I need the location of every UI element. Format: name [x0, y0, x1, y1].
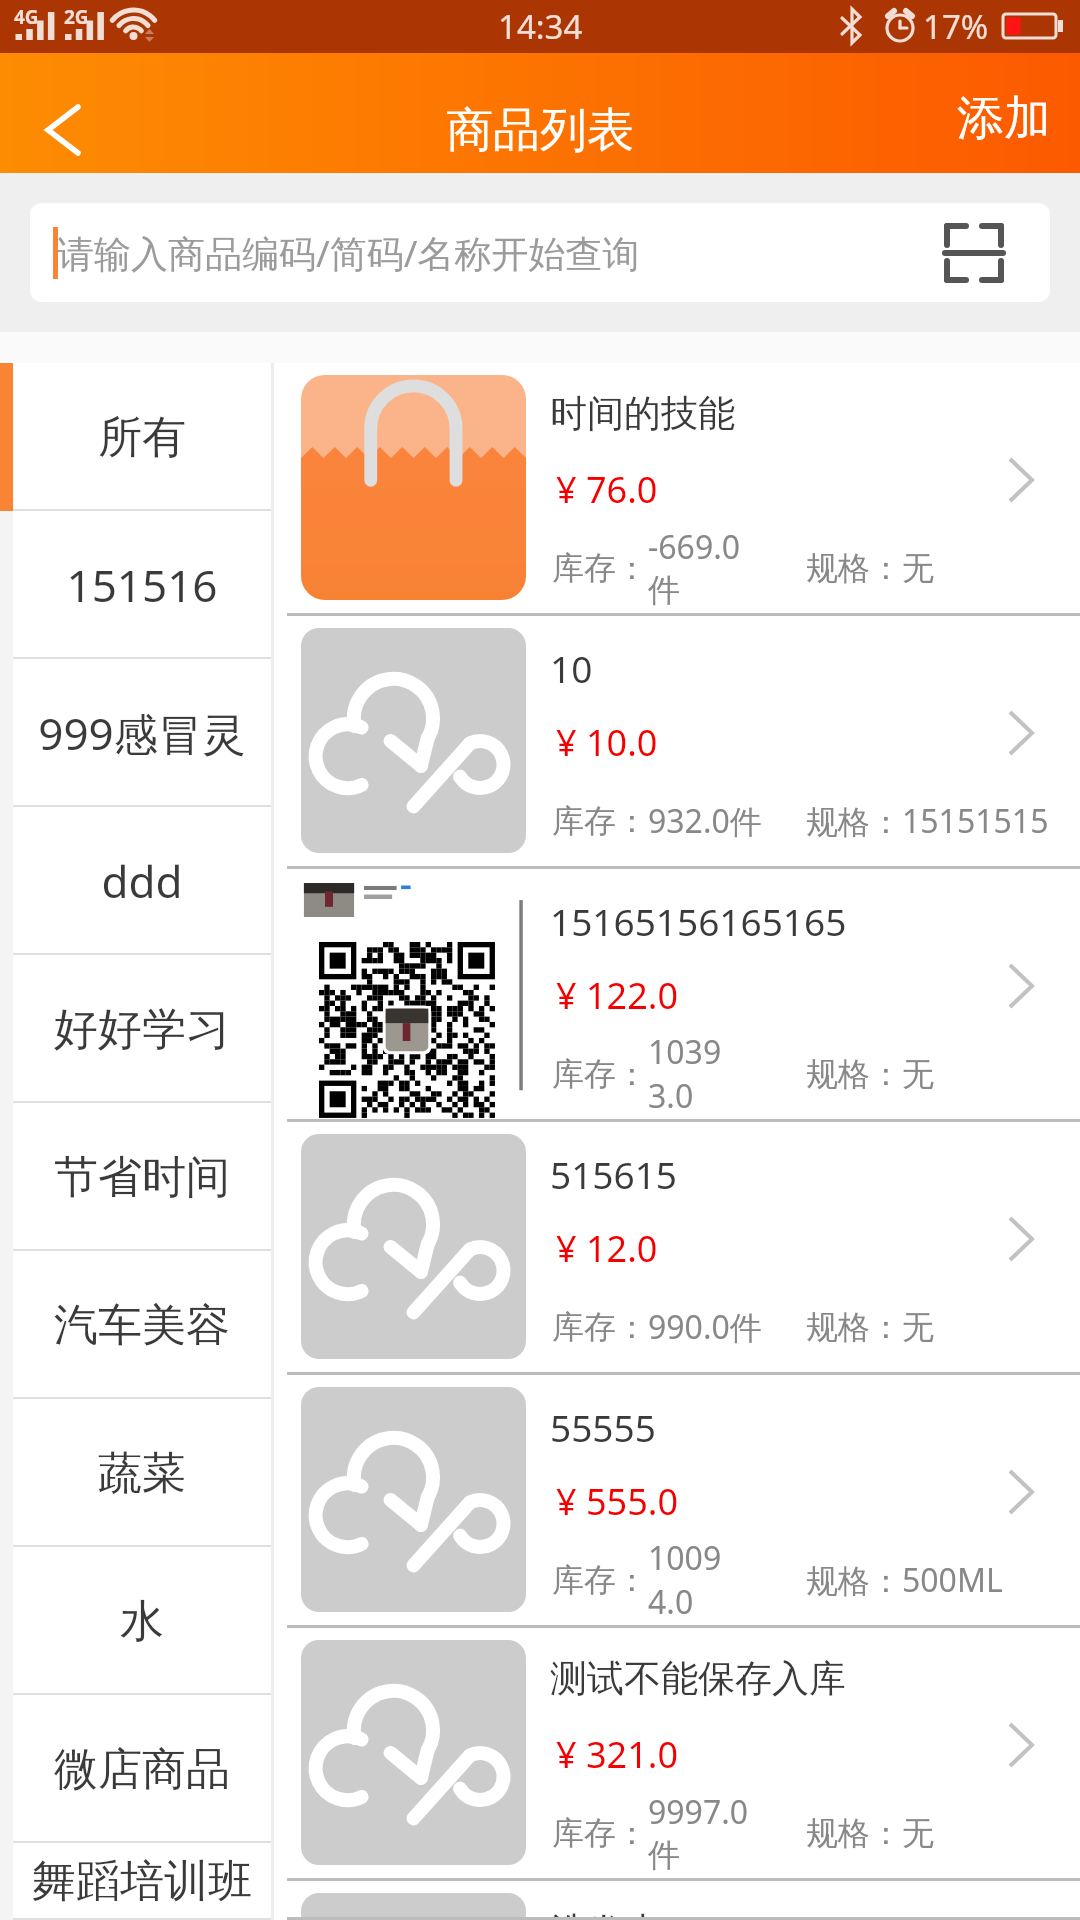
staticText: 规格：无	[806, 1813, 934, 1853]
staticText: 规格：15151515	[806, 799, 1049, 843]
button[interactable]: 添加	[927, 53, 1080, 173]
staticText: 规格：无	[806, 1307, 934, 1347]
staticText: ddd	[101, 851, 183, 911]
staticText: 4G	[14, 4, 39, 30]
button[interactable]: 好好学习	[0, 955, 271, 1103]
button[interactable]: 15165156165165	[271, 869, 1080, 1122]
button[interactable]: 测试不能保存入库	[271, 1628, 1080, 1881]
button[interactable]: 洗发水	[271, 1881, 1080, 1920]
staticText: 151516	[66, 555, 218, 615]
staticText: 10	[550, 643, 593, 693]
staticText: 2G	[64, 4, 89, 30]
button[interactable]: ddd	[0, 807, 271, 955]
staticText: 14:34	[498, 4, 583, 49]
staticText: 库存：	[552, 548, 648, 588]
staticText: 微店商品	[54, 1742, 230, 1797]
staticText: ¥ 10.0	[556, 718, 658, 767]
staticText: 17%	[923, 4, 989, 49]
button[interactable]: 舞蹈培训班	[0, 1843, 271, 1920]
staticText: -669.0 件	[648, 525, 772, 611]
staticText: 库存：	[552, 1054, 648, 1094]
staticText: 990.0件	[648, 1305, 772, 1349]
button[interactable]: 55555	[271, 1375, 1080, 1628]
staticText: ¥ 555.0	[556, 1477, 678, 1526]
staticText: 水	[120, 1594, 164, 1649]
button[interactable]: 节省时间	[0, 1103, 271, 1251]
button[interactable]: 汽车美容	[0, 1251, 271, 1399]
staticText: 规格：无	[806, 548, 934, 588]
staticText: 1009 4.0	[648, 1536, 772, 1624]
staticText: ¥ 321.0	[556, 1730, 678, 1779]
staticText: 库存：	[552, 1813, 648, 1853]
other: Scan barcode	[943, 222, 1005, 284]
staticText: 库存：	[552, 1307, 648, 1347]
staticText: 规格：无	[806, 1054, 934, 1094]
staticText: 库存：	[552, 801, 648, 841]
button[interactable]: 水	[0, 1547, 271, 1695]
button[interactable]: 151516	[0, 511, 271, 659]
button[interactable]: 蔬菜	[0, 1399, 271, 1547]
staticText: ¥ 122.0	[556, 971, 678, 1020]
staticText: 15165156165165	[550, 896, 847, 946]
staticText: 舞蹈培训班	[32, 1854, 252, 1909]
staticText: 库存：	[552, 1560, 648, 1600]
staticText: 1039 3.0	[648, 1030, 772, 1118]
staticText: 添加	[957, 89, 1051, 148]
staticText: 515615	[550, 1149, 677, 1199]
button[interactable]: 所有	[0, 363, 271, 511]
staticText: 汽车美容	[54, 1298, 230, 1353]
staticText: 蔬菜	[98, 1446, 186, 1501]
button[interactable]: 微店商品	[0, 1695, 271, 1843]
button[interactable]: Back	[0, 53, 122, 173]
staticText: 好好学习	[54, 1002, 230, 1057]
staticText: 时间的技能	[550, 390, 735, 437]
staticText: 洗发水	[550, 1908, 661, 1920]
staticText: 请输入商品编码/简码/名称开始查询	[57, 227, 640, 278]
staticText: 55555	[550, 1402, 656, 1452]
staticText: 商品列表	[446, 101, 634, 160]
button[interactable]: 请输入商品编码/简码/名称开始查询	[30, 203, 1050, 302]
staticText: 9997.0 件	[648, 1790, 772, 1876]
staticText: 规格：500ML	[806, 1558, 1003, 1602]
staticText: 999感冒灵	[38, 703, 246, 763]
staticText: 节省时间	[54, 1150, 230, 1205]
button[interactable]: 999感冒灵	[0, 659, 271, 807]
staticText: 测试不能保存入库	[550, 1655, 846, 1702]
button[interactable]: 515615	[271, 1122, 1080, 1375]
button[interactable]: 时间的技能	[271, 363, 1080, 616]
staticText: ¥ 12.0	[556, 1224, 658, 1273]
staticText: 所有	[98, 410, 186, 465]
button[interactable]: 10	[271, 616, 1080, 869]
staticText: ¥ 76.0	[556, 465, 658, 514]
staticText: 932.0件	[648, 799, 772, 843]
